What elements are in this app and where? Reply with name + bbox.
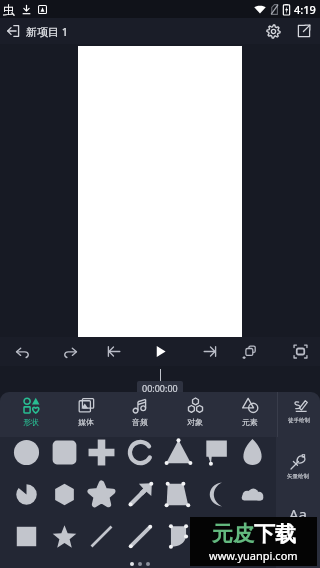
button[interactable]: Shape 18 (121, 519, 159, 553)
staticText: 新项目 1 (26, 24, 69, 39)
button[interactable]: Fit to screen (286, 337, 314, 366)
button[interactable]: Shape 19 (159, 519, 197, 553)
button[interactable]: Shape 20 (196, 519, 234, 553)
button[interactable]: Shape 16 (45, 519, 83, 553)
button[interactable]: Shape 2 (45, 435, 83, 469)
button[interactable]: Redo (56, 337, 84, 366)
button[interactable]: Shape 8 (7, 477, 45, 511)
staticText: 音频 (132, 417, 148, 427)
button[interactable]: 形状 (4, 392, 58, 437)
staticText: 文本 (293, 526, 304, 533)
button[interactable]: Shape 7 (233, 435, 271, 469)
button[interactable]: 音频 (113, 392, 167, 437)
staticText: 4:19 (294, 2, 316, 17)
button[interactable]: Shape 4 (121, 435, 159, 469)
button[interactable]: Play (146, 337, 174, 366)
button[interactable]: Shape 21 (233, 519, 271, 553)
button[interactable]: Loop (235, 337, 263, 366)
button[interactable]: Shape 6 (196, 435, 234, 469)
button[interactable]: Export (288, 18, 320, 44)
button[interactable]: Shape 3 (82, 435, 120, 469)
staticText: 元皮 (212, 521, 254, 547)
button[interactable]: 元素 (223, 392, 277, 437)
button[interactable]: 媒体 (59, 392, 113, 437)
staticText: 形状 (23, 417, 39, 427)
staticText: 徒手绘制 (288, 417, 310, 424)
staticText: 媒体 (78, 417, 94, 427)
button[interactable]: Shape 14 (233, 477, 271, 511)
button[interactable]: Shape 11 (121, 477, 159, 511)
staticText: 下载 (254, 521, 296, 547)
staticText: 00:00:00 (142, 382, 178, 394)
staticText: 元素 (242, 417, 258, 427)
button[interactable]: Shape 5 (159, 435, 197, 469)
button[interactable]: Shape 1 (7, 435, 45, 469)
staticText: 矢量绘制 (287, 473, 309, 480)
button[interactable]: Shape 10 (82, 477, 120, 511)
button[interactable]: Aa (276, 495, 320, 541)
button[interactable]: Skip to start (99, 337, 127, 366)
button[interactable]: Back (0, 18, 26, 44)
button[interactable]: Settings (258, 18, 288, 44)
button[interactable]: Shape 17 (82, 519, 120, 553)
staticText: 对象 (187, 417, 203, 427)
staticText: 虫 (3, 2, 15, 17)
button[interactable]: Shape 12 (159, 477, 197, 511)
button[interactable]: Shape 13 (196, 477, 234, 511)
staticText: www.yuanpi.com (209, 548, 298, 563)
button[interactable]: 徒手绘制 (278, 392, 320, 437)
button[interactable]: Shape 9 (45, 477, 83, 511)
staticText: Aa (289, 504, 308, 524)
button[interactable]: Skip to end (196, 337, 224, 366)
button[interactable]: Shape 15 (7, 519, 45, 553)
button[interactable]: Undo (8, 337, 36, 366)
button[interactable]: 矢量绘制 (276, 443, 320, 489)
button[interactable]: 对象 (168, 392, 222, 437)
